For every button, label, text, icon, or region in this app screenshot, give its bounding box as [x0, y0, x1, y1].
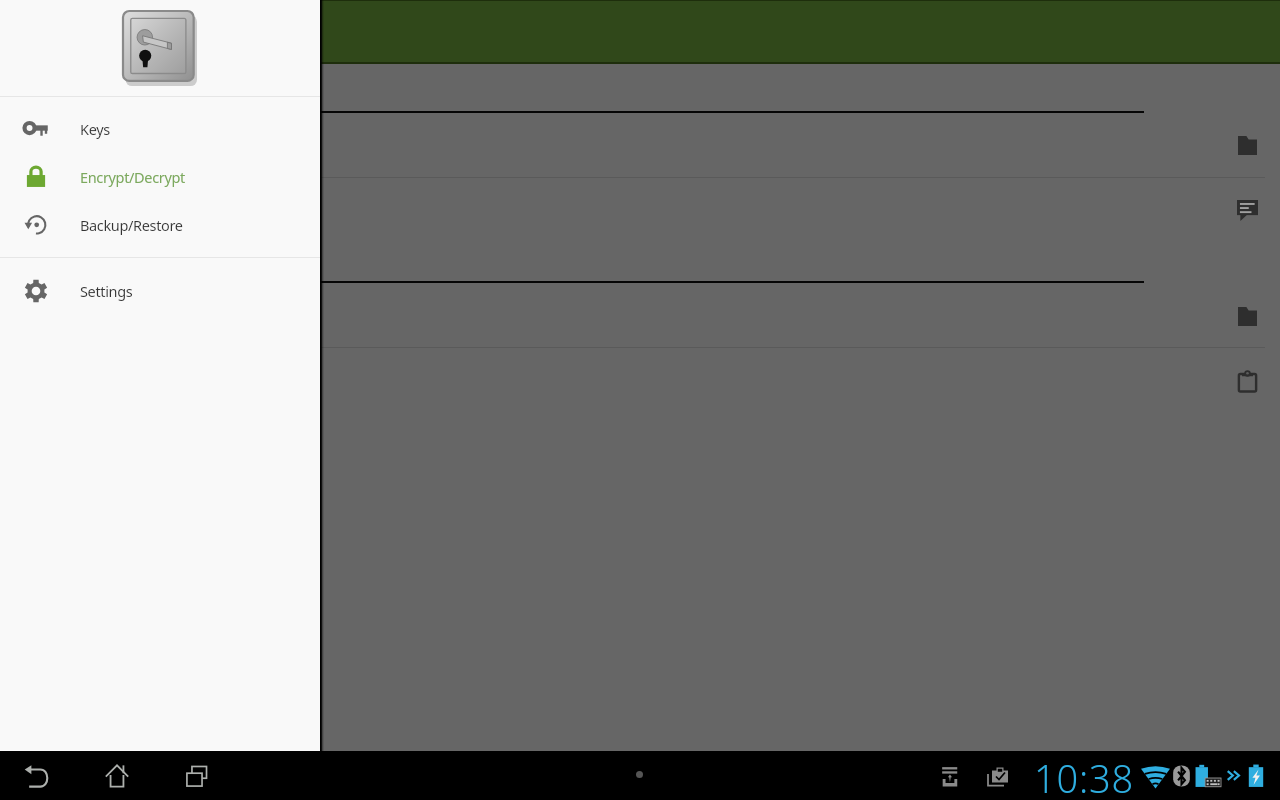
button[interactable]: Copy to clipboard [1231, 365, 1263, 397]
button[interactable]: Backup/Restore [0, 201, 320, 249]
staticText: Backup/Restore [80, 215, 183, 235]
button[interactable]: Keys [0, 105, 320, 153]
button[interactable]: Message [1231, 194, 1263, 226]
staticText: Encrypt/Decrypt [80, 167, 185, 187]
staticText: 10:38 [1034, 752, 1135, 800]
button[interactable]: Encrypt/Decrypt [0, 153, 320, 201]
staticText: Keys [80, 119, 110, 139]
button[interactable]: Pick file [1231, 129, 1263, 161]
button[interactable]: Pick file [1231, 300, 1263, 332]
button[interactable]: Recent apps [182, 761, 212, 791]
button[interactable]: Close navigation drawer [0, 64, 1280, 751]
button[interactable]: Back [22, 761, 52, 791]
staticText: Settings [80, 281, 133, 301]
button[interactable]: Home [102, 761, 132, 791]
button[interactable]: Settings [0, 267, 320, 315]
